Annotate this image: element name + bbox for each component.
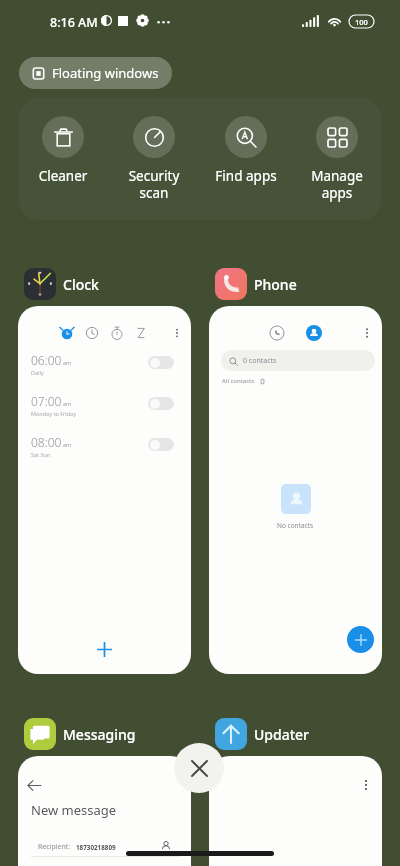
- staticText: Messaging: [63, 725, 136, 744]
- button[interactable]: Alarm: [60, 326, 74, 340]
- staticText: Manage apps: [297, 167, 377, 202]
- staticText: Floating windows: [52, 64, 159, 82]
- button[interactable]: Updater: [209, 718, 310, 756]
- staticText: Daily: [31, 369, 44, 376]
- button[interactable]: Find apps: [206, 98, 286, 220]
- button[interactable]: More options: [170, 326, 184, 340]
- staticText: Security scan: [114, 167, 194, 202]
- button[interactable]: World clock: [85, 326, 99, 340]
- staticText: am: [63, 359, 72, 366]
- staticText: 8:16 AM: [50, 14, 98, 31]
- staticText: 07:00: [31, 393, 62, 409]
- button[interactable]: Timer: [134, 326, 148, 340]
- staticText: Updater: [254, 725, 310, 744]
- button[interactable]: Alarm: [18, 306, 191, 674]
- staticText: 18730218809: [76, 843, 116, 852]
- button[interactable]: Pick contact: [160, 840, 172, 852]
- staticText: am: [63, 400, 72, 407]
- button[interactable]: Add contact: [347, 626, 374, 653]
- button[interactable]: Contacts: [306, 325, 322, 341]
- button[interactable]: Messaging: [18, 718, 136, 756]
- staticText: No contacts: [277, 521, 314, 530]
- button[interactable]: Dialer: [209, 306, 382, 674]
- button[interactable]: Manage apps: [297, 98, 377, 220]
- staticText: 0 contacts: [243, 356, 277, 366]
- staticText: 06:00: [31, 352, 62, 368]
- staticText: Clock: [63, 275, 99, 294]
- staticText: Recipient:: [38, 842, 71, 852]
- button[interactable]: Close: [174, 743, 224, 793]
- staticText: Find apps: [206, 167, 286, 185]
- staticText: Cleaner: [23, 167, 103, 185]
- button[interactable]: More options: [209, 756, 382, 866]
- staticText: New message: [31, 801, 117, 819]
- staticText: 100: [355, 17, 368, 27]
- button[interactable]: Dialer: [269, 325, 285, 341]
- staticText: am: [63, 441, 72, 448]
- button[interactable]: Stopwatch: [110, 326, 124, 340]
- staticText: Monday to Friday: [31, 410, 76, 417]
- button[interactable]: More options: [359, 325, 375, 341]
- staticText: Phone: [254, 275, 297, 294]
- button[interactable]: Cleaner: [23, 98, 103, 220]
- button[interactable]: Clock: [18, 268, 99, 306]
- button[interactable]: Floating windows: [19, 57, 172, 89]
- staticText: 08:00: [31, 434, 62, 450]
- button[interactable]: More options: [359, 778, 373, 792]
- button[interactable]: Add alarm: [18, 629, 191, 669]
- button[interactable]: All contacts: [222, 377, 266, 385]
- staticText: Sat Sun: [31, 451, 51, 458]
- button[interactable]: 06:00: [18, 352, 191, 388]
- button[interactable]: 07:00: [18, 393, 191, 429]
- button[interactable]: Back: [18, 756, 191, 866]
- button[interactable]: Back: [25, 776, 43, 794]
- button[interactable]: 08:00: [18, 434, 191, 470]
- staticText: All contacts: [222, 377, 255, 385]
- button[interactable]: Phone: [209, 268, 297, 306]
- button[interactable]: Security scan: [114, 98, 194, 220]
- button[interactable]: 0 contacts: [221, 350, 375, 371]
